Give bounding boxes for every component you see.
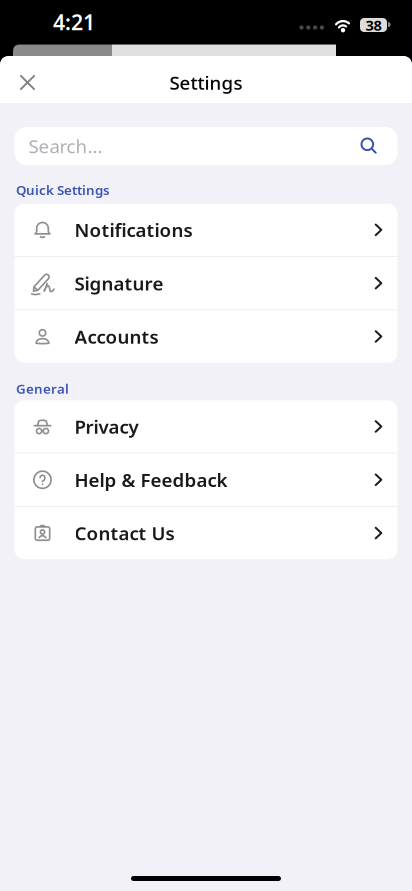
- staticText: Help & Feedback: [74, 467, 227, 492]
- staticText: Search...: [28, 134, 102, 158]
- button[interactable]: Accounts: [14, 310, 397, 363]
- button[interactable]: Close: [0, 59, 35, 106]
- button[interactable]: Contact Us: [14, 507, 397, 559]
- button[interactable]: Help & Feedback: [14, 454, 397, 506]
- staticText: Quick Settings: [16, 181, 110, 199]
- staticText: General: [16, 380, 69, 397]
- button[interactable]: Signature: [14, 257, 397, 309]
- staticText: Signature: [74, 271, 163, 296]
- staticText: 4:21: [53, 8, 95, 36]
- staticText: Settings: [169, 70, 242, 95]
- staticText: Notifications: [74, 217, 192, 242]
- button[interactable]: Search: [14, 127, 397, 165]
- staticText: Contact Us: [74, 521, 174, 545]
- button[interactable]: Notifications: [14, 204, 397, 256]
- staticText: Accounts: [74, 324, 158, 349]
- staticText: 38: [365, 15, 381, 35]
- button[interactable]: Privacy: [14, 400, 397, 453]
- staticText: Privacy: [74, 414, 138, 439]
